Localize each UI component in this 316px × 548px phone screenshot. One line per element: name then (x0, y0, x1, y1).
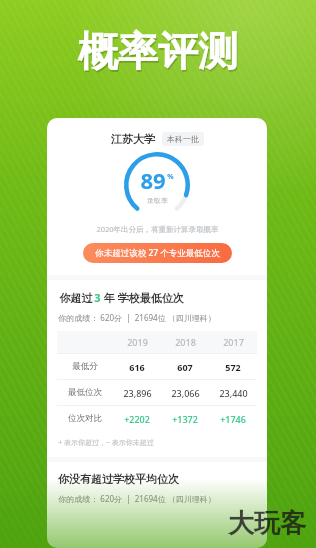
staticText: 江苏大学 (111, 132, 155, 146)
staticText: 23,896 (123, 387, 152, 399)
staticText: 本科一批 (167, 134, 199, 144)
button[interactable]: 最低分 (57, 354, 257, 379)
button[interactable]: 位次对比 (57, 406, 257, 431)
staticText: % (167, 172, 174, 182)
staticText: 概率评测 (78, 26, 238, 76)
staticText: +2202 (124, 413, 150, 425)
staticText: 23,440 (219, 387, 248, 399)
staticText: 概率评测 (79, 28, 239, 78)
staticText: 大玩客 (228, 507, 306, 540)
staticText: 2020年出分后，将重新计算录取概率 (96, 224, 219, 234)
staticText: 年 学校最低位次 (101, 290, 184, 305)
staticText: 你超过 (58, 290, 94, 305)
staticText: 最低位次 (68, 387, 102, 398)
staticText: 2018 (175, 336, 196, 348)
button[interactable]: 你未超过该校 27 个专业最低位次 (83, 243, 232, 263)
staticText: 录取率 (147, 196, 168, 205)
staticText: 572 (225, 361, 241, 373)
staticText: 你的成绩： 620分 | 21694位 （四川理科） (58, 493, 216, 504)
staticText: 你未超过该校 27 个专业最低位次 (95, 247, 220, 259)
staticText: +1372 (172, 413, 198, 425)
staticText: 位次对比 (68, 413, 102, 424)
staticText: 607 (177, 361, 193, 373)
staticText: 2019 (127, 336, 148, 348)
staticText: 最低分 (72, 361, 98, 372)
staticText: 23,066 (171, 387, 200, 399)
staticText: 你没有超过学校平均位次 (58, 472, 179, 486)
button[interactable]: 最低位次 (57, 380, 257, 405)
staticText: +1746 (220, 413, 246, 425)
staticText: 3 (94, 290, 101, 305)
button[interactable]: 本科一批 (162, 132, 204, 146)
staticText: 2017 (223, 336, 244, 348)
staticText: + 表示你超过，− 表示你未超过 (58, 438, 154, 448)
staticText: 89 (140, 165, 166, 195)
staticText: 你的成绩： 620分 | 21694位 （四川理科） (58, 312, 216, 323)
staticText: 616 (129, 361, 145, 373)
button[interactable]: 2019 (57, 331, 257, 353)
